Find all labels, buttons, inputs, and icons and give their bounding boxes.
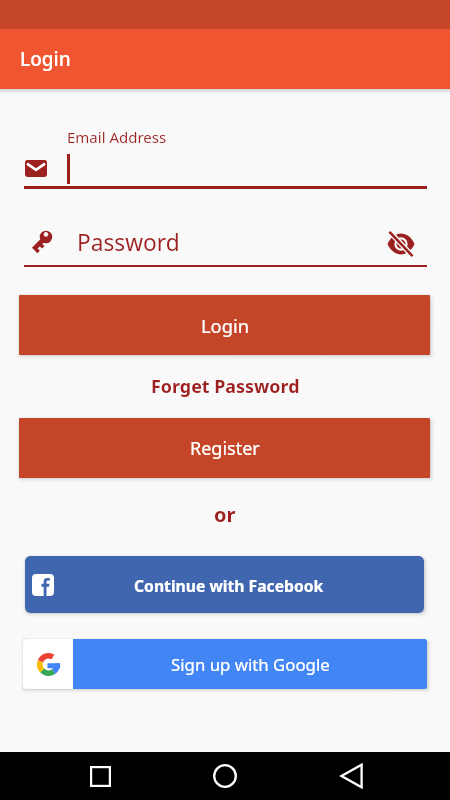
- button[interactable]: Password field: [24, 222, 427, 267]
- staticText: Continue with Facebook: [134, 575, 324, 596]
- button[interactable]: Continue with Facebook: [25, 556, 424, 613]
- button[interactable]: Email Address field: [24, 124, 427, 189]
- staticText: or: [214, 501, 236, 528]
- button[interactable]: Toggle password visibility: [386, 229, 416, 259]
- button[interactable]: Home: [205, 756, 245, 796]
- staticText: Password: [77, 227, 180, 258]
- staticText: Forget Password: [151, 374, 300, 398]
- staticText: Sign up with Google: [171, 653, 330, 676]
- button[interactable]: Login: [19, 295, 430, 355]
- button[interactable]: Forget Password: [0, 370, 450, 402]
- button[interactable]: Register: [19, 418, 430, 478]
- staticText: Login: [20, 46, 71, 72]
- button[interactable]: Back: [332, 756, 372, 796]
- button[interactable]: Sign up with Google: [23, 639, 427, 689]
- button[interactable]: Recents: [80, 756, 120, 796]
- staticText: Email Address: [67, 127, 167, 147]
- staticText: Login: [201, 313, 249, 338]
- staticText: Register: [190, 436, 260, 461]
